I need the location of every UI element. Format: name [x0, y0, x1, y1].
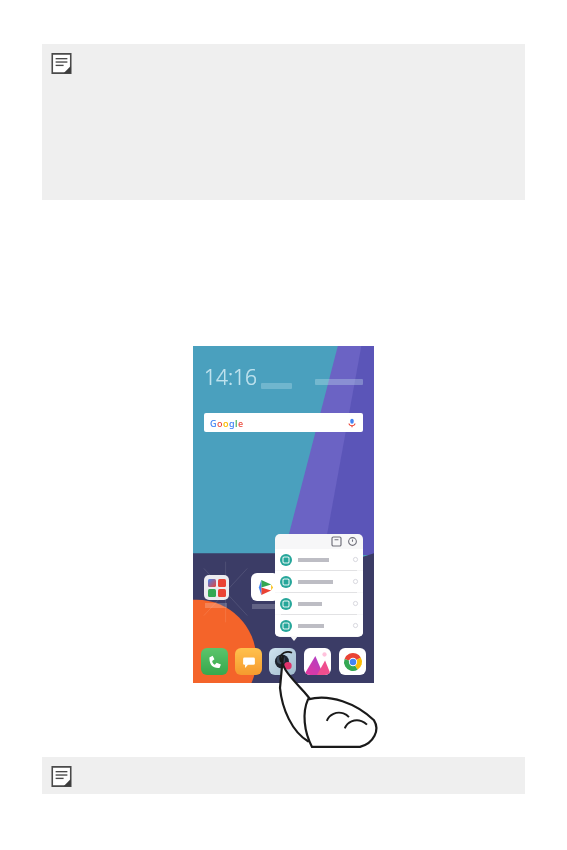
other: Voice search — [347, 418, 357, 428]
button[interactable]: App info — [348, 537, 357, 546]
button[interactable] — [275, 615, 363, 636]
button[interactable] — [275, 549, 363, 570]
button[interactable]: Chrome — [335, 644, 370, 678]
staticText: o — [217, 417, 223, 429]
button[interactable]: Phone — [197, 644, 231, 678]
staticText: g — [229, 417, 235, 429]
button[interactable] — [275, 593, 363, 614]
staticText: 14:16 — [204, 363, 258, 392]
other: Note — [51, 53, 72, 74]
staticText: G — [210, 417, 217, 429]
staticText: e — [238, 417, 244, 429]
button[interactable]: Note — [42, 757, 525, 794]
other: Note — [51, 766, 72, 787]
button[interactable]: Play Store — [251, 573, 279, 601]
button[interactable]: G — [204, 413, 363, 432]
staticText: l — [235, 417, 238, 429]
staticText: o — [223, 417, 229, 429]
button[interactable]: Messages — [231, 644, 265, 678]
button[interactable]: Note — [42, 44, 525, 200]
button[interactable]: Google folder — [204, 575, 229, 600]
button[interactable]: Gallery — [300, 644, 335, 678]
button[interactable] — [275, 571, 363, 592]
button[interactable]: Widgets — [332, 537, 341, 546]
button[interactable]: Camera — [265, 644, 300, 678]
